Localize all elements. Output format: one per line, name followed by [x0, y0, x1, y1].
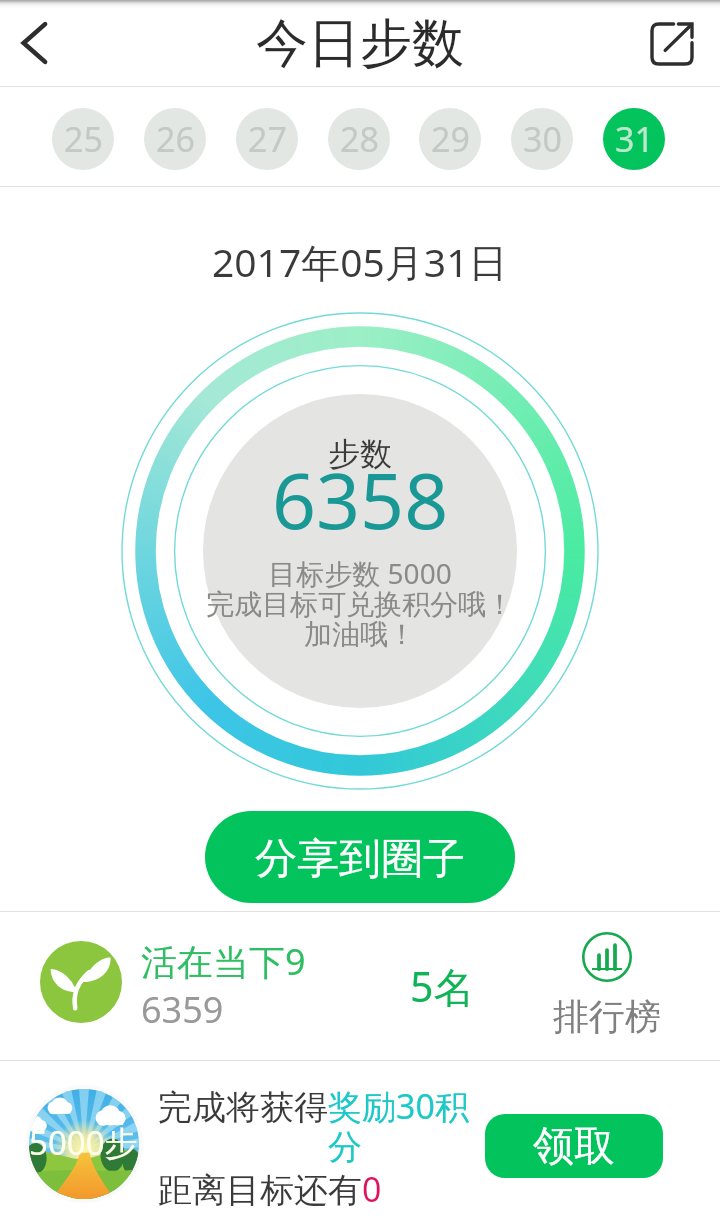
button[interactable]: 28: [328, 108, 390, 170]
staticText: 27: [248, 116, 287, 162]
staticText: 距离目标还有0: [158, 1166, 382, 1212]
button[interactable]: 排行榜: [540, 920, 672, 1052]
staticText: 活在当下9: [141, 937, 306, 986]
staticText: 分享到圈子: [255, 833, 465, 886]
staticText: 30: [523, 116, 562, 162]
staticText: 31: [615, 116, 654, 162]
staticText: 领取: [533, 1121, 615, 1173]
staticText: 完成将获得奖励30积: [158, 1083, 469, 1129]
staticText: 2017年05月31日: [212, 235, 508, 288]
staticText: 5000步: [29, 1120, 138, 1165]
staticText: 28: [340, 116, 379, 162]
staticText: 25: [64, 116, 103, 162]
button[interactable]: 27: [236, 108, 298, 170]
staticText: 29: [431, 116, 470, 162]
staticText: 26: [156, 116, 195, 162]
button[interactable]: 26: [144, 108, 206, 170]
staticText: 5名: [410, 958, 475, 1014]
button[interactable]: Share: [642, 14, 702, 74]
button[interactable]: Back: [5, 13, 65, 73]
staticText: 6358: [272, 447, 449, 552]
staticText: 步数: [328, 434, 392, 474]
button[interactable]: 分享到圈子: [205, 811, 515, 903]
staticText: 今日步数: [256, 11, 464, 77]
button[interactable]: 29: [419, 108, 481, 170]
staticText: 分: [328, 1126, 362, 1169]
staticText: 6359: [141, 985, 224, 1034]
button[interactable]: 25: [52, 108, 114, 170]
button[interactable]: 30: [511, 108, 573, 170]
button[interactable]: 领取: [485, 1114, 663, 1178]
button[interactable]: 31: [603, 108, 665, 170]
staticText: 目标步数 5000 完成目标可兑换积分哦！ 加油哦！: [206, 554, 514, 653]
staticText: 排行榜: [553, 994, 661, 1039]
